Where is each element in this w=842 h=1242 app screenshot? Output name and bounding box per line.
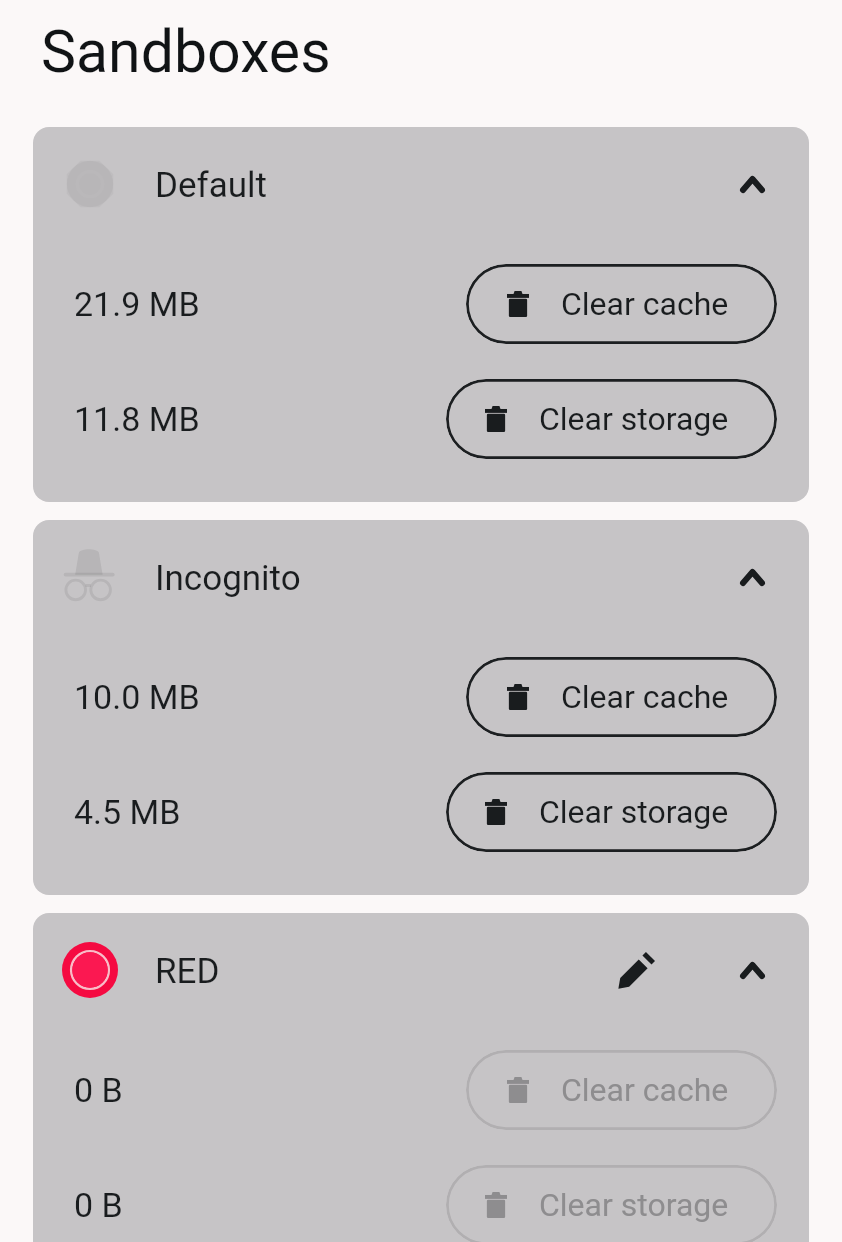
staticText: RED (155, 951, 220, 992)
staticText: Clear storage (539, 793, 729, 831)
staticText: Clear cache (561, 285, 729, 323)
button[interactable]: Clear cache (466, 264, 777, 344)
button[interactable]: Clear storage (446, 772, 777, 852)
staticText: 0 B (74, 1185, 123, 1225)
staticText: 0 B (74, 1070, 123, 1110)
staticText: 21.9 MB (74, 284, 200, 324)
staticText: Default (155, 165, 267, 206)
staticText: 11.8 MB (74, 399, 200, 439)
button[interactable]: Edit sandbox (612, 946, 660, 994)
button[interactable]: RED (33, 913, 809, 1027)
staticText: Clear storage (539, 400, 729, 438)
button[interactable]: Collapse (728, 160, 776, 208)
staticText: Sandboxes (41, 17, 331, 86)
button[interactable]: Clear storage (446, 1165, 777, 1242)
button[interactable]: Collapse (728, 553, 776, 601)
button[interactable]: Clear cache (466, 657, 777, 737)
staticText: Clear cache (561, 1071, 729, 1109)
staticText: 4.5 MB (74, 792, 181, 832)
button[interactable]: Clear storage (446, 379, 777, 459)
staticText: Incognito (155, 558, 301, 599)
button[interactable]: Default (33, 127, 809, 241)
button[interactable]: Clear cache (466, 1050, 777, 1130)
staticText: Clear storage (539, 1186, 729, 1224)
button[interactable]: Collapse (728, 946, 776, 994)
button[interactable]: Incognito (33, 520, 809, 634)
staticText: 10.0 MB (74, 677, 200, 717)
staticText: Clear cache (561, 678, 729, 716)
